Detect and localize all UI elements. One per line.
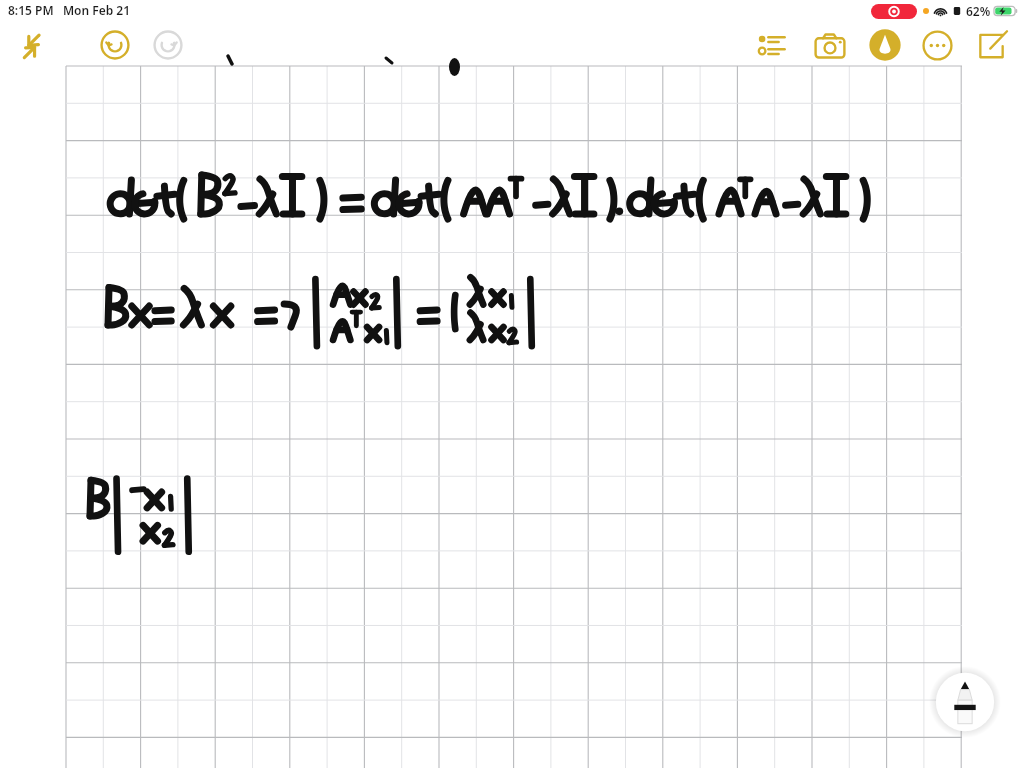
button[interactable]: New note <box>976 30 1007 61</box>
button[interactable]: Camera <box>814 30 846 62</box>
button[interactable]: Collapse <box>16 30 48 62</box>
staticText: 8:15 PM Mon Feb 21 <box>8 2 131 18</box>
button[interactable]: Pen tool <box>868 28 902 62</box>
other: Screen recording <box>871 4 917 19</box>
button[interactable]: Undo <box>99 29 131 61</box>
staticText: 62% <box>966 3 991 19</box>
button[interactable]: Pen tool <box>934 671 996 733</box>
button[interactable]: More options <box>922 30 953 61</box>
button[interactable]: Checklist <box>757 30 787 60</box>
button[interactable]: Redo <box>152 29 184 61</box>
